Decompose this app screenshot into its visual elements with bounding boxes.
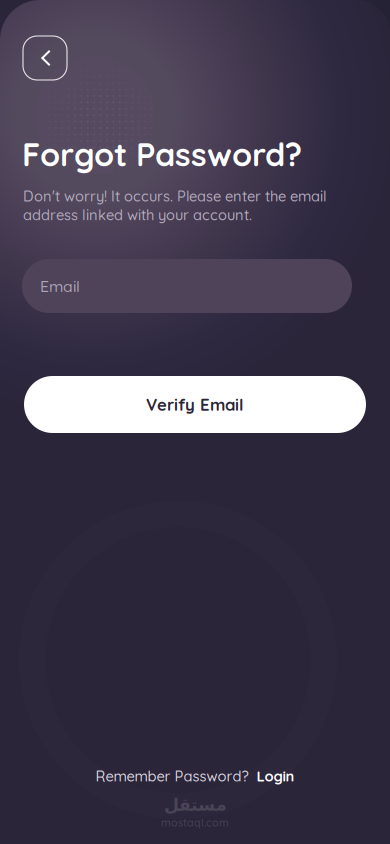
button[interactable]: Login: [248, 767, 294, 785]
staticText: Email: [40, 276, 80, 296]
staticText: Forgot Password?: [22, 134, 302, 174]
staticText: address linked with your account.: [23, 206, 252, 224]
staticText: Verify Email: [146, 394, 244, 415]
button[interactable]: Back: [23, 36, 67, 80]
staticText: mostaql.com: [161, 816, 229, 829]
staticText: Don't worry! It occurs. Please enter the…: [23, 187, 327, 205]
button[interactable]: Verify Email: [24, 376, 366, 433]
staticText: Login: [256, 767, 294, 785]
staticText: Remember Password?: [95, 767, 248, 785]
staticText: مستقل: [163, 795, 226, 815]
